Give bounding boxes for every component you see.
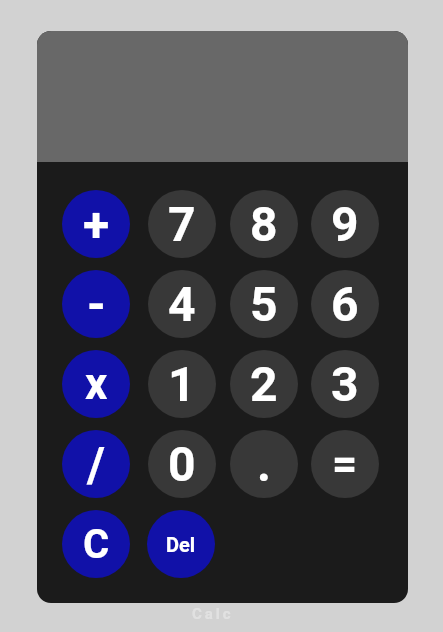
staticText: = xyxy=(332,438,358,490)
button[interactable]: Del xyxy=(147,510,215,578)
button[interactable]: = xyxy=(311,430,379,498)
staticText: + xyxy=(83,196,110,252)
staticText: . xyxy=(257,436,271,492)
button[interactable]: 7 xyxy=(148,190,216,258)
staticText: 4 xyxy=(168,276,196,332)
staticText: 2 xyxy=(250,356,278,412)
staticText: 3 xyxy=(331,356,359,412)
button[interactable]: 2 xyxy=(230,350,298,418)
button[interactable]: 6 xyxy=(311,270,379,338)
button[interactable]: / xyxy=(62,430,130,498)
staticText: 7 xyxy=(168,196,196,252)
staticText: Calc xyxy=(192,605,234,623)
button[interactable]: 0 xyxy=(148,430,216,498)
staticText: 1 xyxy=(168,356,196,412)
staticText: 0 xyxy=(168,436,196,492)
staticText: 9 xyxy=(331,196,359,252)
button[interactable]: . xyxy=(230,430,298,498)
button[interactable]: 3 xyxy=(311,350,379,418)
staticText: C xyxy=(83,521,110,568)
button[interactable]: 1 xyxy=(148,350,216,418)
button[interactable]: - xyxy=(62,270,130,338)
button[interactable]: C xyxy=(62,510,130,578)
button[interactable]: 9 xyxy=(311,190,379,258)
staticText: 6 xyxy=(331,276,359,332)
staticText: / xyxy=(87,436,105,492)
button[interactable]: + xyxy=(62,190,130,258)
staticText: - xyxy=(87,276,106,332)
staticText: Del xyxy=(166,533,196,556)
staticText: 5 xyxy=(250,276,278,332)
button[interactable]: 4 xyxy=(148,270,216,338)
button[interactable]: 5 xyxy=(230,270,298,338)
button[interactable]: 8 xyxy=(230,190,298,258)
staticText: 8 xyxy=(250,196,278,252)
staticText: x xyxy=(85,358,108,410)
button[interactable]: x xyxy=(62,350,130,418)
